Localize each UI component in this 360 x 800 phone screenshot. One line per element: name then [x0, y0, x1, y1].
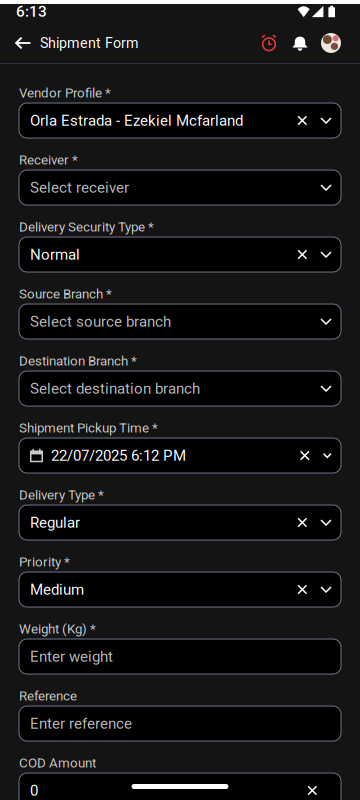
staticText: *: [106, 286, 112, 302]
staticText: *: [152, 420, 158, 436]
button[interactable]: Regular: [19, 505, 341, 540]
staticText: Weight (Kg): [19, 621, 87, 637]
button[interactable]: 0: [19, 773, 341, 800]
staticText: 22/07/2025 6:12 PM: [51, 447, 186, 464]
staticText: Shipment Form: [40, 35, 139, 51]
button[interactable]: Normal: [19, 237, 341, 272]
staticText: *: [72, 152, 78, 168]
staticText: *: [105, 85, 111, 101]
button[interactable]: Enter reference: [19, 706, 341, 741]
staticText: Destination Branch: [19, 353, 128, 369]
staticText: 6:13: [16, 2, 47, 20]
staticText: Vendor Profile: [19, 85, 102, 101]
button[interactable]: 22/07/2025 6:12 PM: [19, 438, 341, 473]
button[interactable]: Orla Estrada - Ezekiel Mcfarland: [19, 103, 341, 138]
button[interactable]: Medium: [19, 572, 341, 607]
staticText: Priority: [19, 554, 61, 570]
staticText: *: [148, 219, 154, 235]
button[interactable]: Select destination branch: [19, 371, 341, 406]
staticText: *: [64, 554, 70, 570]
button[interactable]: Enter weight: [19, 639, 341, 674]
staticText: Orla Estrada - Ezekiel Mcfarland: [30, 112, 243, 129]
staticText: Source Branch: [19, 286, 103, 302]
staticText: Enter reference: [30, 715, 132, 732]
button[interactable]: Select source branch: [19, 304, 341, 339]
button[interactable]: Alarm: [258, 32, 280, 54]
staticText: Delivery Type: [19, 487, 95, 503]
staticText: *: [90, 621, 96, 637]
staticText: Select source branch: [30, 313, 171, 330]
button[interactable]: Notifications: [289, 32, 311, 54]
staticText: Medium: [30, 581, 84, 598]
button[interactable]: Profile: [321, 33, 341, 53]
staticText: Enter weight: [30, 648, 113, 665]
staticText: Shipment Pickup Time: [19, 420, 149, 436]
button[interactable]: Back: [11, 30, 35, 56]
staticText: Select destination branch: [30, 380, 200, 397]
staticText: Delivery Security Type: [19, 219, 145, 235]
staticText: COD Amount: [19, 755, 96, 771]
staticText: Select receiver: [30, 179, 129, 196]
staticText: Reference: [19, 688, 77, 704]
button[interactable]: Select receiver: [19, 170, 341, 205]
staticText: Receiver: [19, 152, 69, 168]
staticText: *: [131, 353, 137, 369]
staticText: Regular: [30, 514, 80, 531]
staticText: *: [98, 487, 104, 503]
staticText: 0: [30, 782, 38, 799]
staticText: Normal: [30, 246, 80, 263]
